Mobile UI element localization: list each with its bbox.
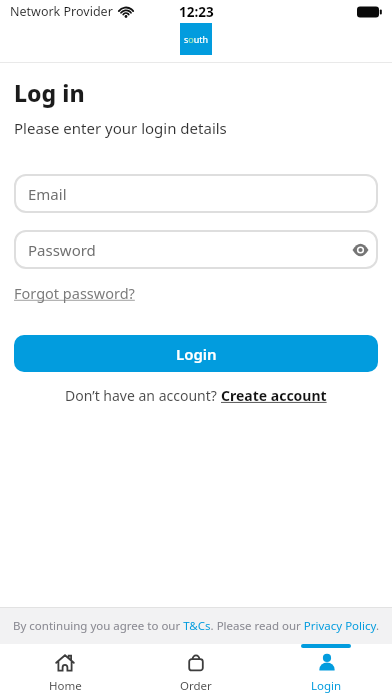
button[interactable]: Email (14, 174, 378, 213)
staticText: Don’t have an account? (65, 386, 221, 405)
staticText: Login (311, 678, 342, 694)
button[interactable]: Order (130, 644, 261, 696)
button[interactable]: Login (261, 644, 392, 696)
button[interactable]: Password (14, 230, 378, 269)
staticText: Order (180, 678, 212, 694)
staticText: 12:23 (179, 3, 214, 21)
staticText: Create account (221, 386, 327, 405)
staticText: Home (49, 678, 82, 694)
button[interactable]: Don’t have an account? (14, 386, 378, 405)
button[interactable]: south (180, 23, 212, 55)
staticText: Network Provider (10, 3, 113, 20)
button[interactable]: Forgot password? (14, 283, 135, 303)
button[interactable]: Home (0, 644, 130, 696)
staticText: south (184, 33, 209, 45)
staticText: Log in (14, 77, 85, 108)
staticText: By continuing you agree to our T&Cs. Ple… (0, 618, 392, 634)
staticText: Login (176, 344, 217, 364)
staticText: Please enter your login details (14, 118, 227, 138)
button[interactable]: Login (14, 335, 378, 372)
staticText: Email (28, 184, 67, 204)
staticText: Password (28, 240, 96, 260)
